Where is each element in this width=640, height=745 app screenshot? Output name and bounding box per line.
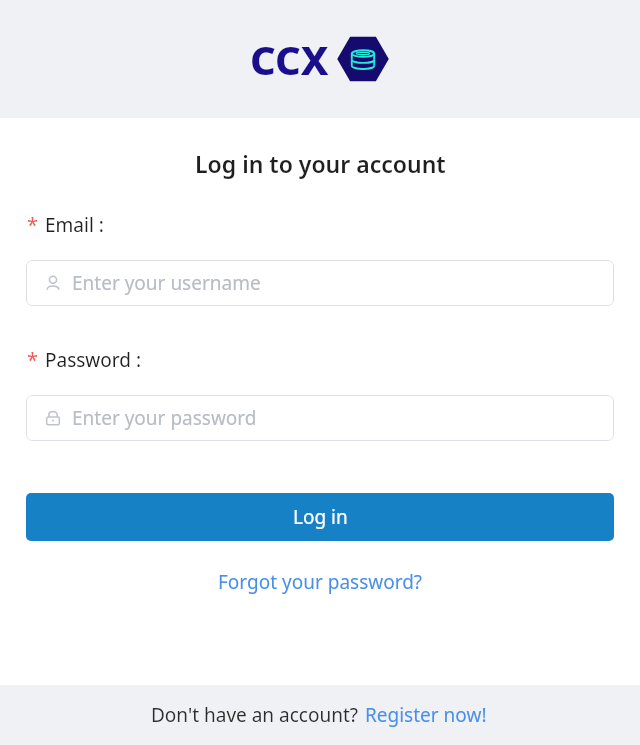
- button[interactable]: Log in: [26, 493, 614, 541]
- button[interactable]: Forgot your password?: [212, 567, 429, 597]
- staticText: Don't have an account?: [151, 702, 363, 728]
- button[interactable]: Register now!: [363, 700, 489, 730]
- button[interactable]: Enter your username: [26, 260, 614, 306]
- staticText: Forgot your password?: [218, 569, 423, 595]
- staticText: Password :: [45, 347, 141, 373]
- staticText: CCX: [250, 32, 329, 86]
- staticText: Email :: [45, 212, 104, 238]
- staticText: Enter your password: [72, 405, 257, 431]
- staticText: Register now!: [365, 702, 487, 728]
- staticText: *: [27, 346, 39, 373]
- button[interactable]: CCX: [250, 31, 391, 87]
- staticText: Enter your username: [72, 270, 261, 296]
- other: CCX logo: [335, 31, 391, 87]
- button[interactable]: Enter your password: [26, 395, 614, 441]
- staticText: Log in to your account: [195, 148, 446, 179]
- staticText: Log in: [293, 504, 348, 530]
- staticText: *: [27, 211, 39, 238]
